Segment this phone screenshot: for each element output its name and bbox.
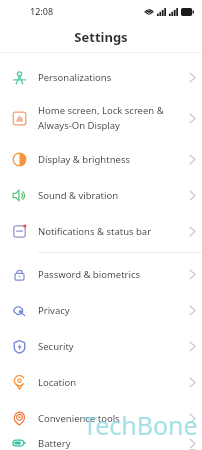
button[interactable]: Display & brightness	[0, 141, 202, 177]
staticText: Personalizations	[38, 71, 112, 84]
staticText: Display & brightness	[38, 153, 130, 166]
button[interactable]: Convenience tools	[0, 400, 202, 436]
staticText: Sound & vibration	[38, 189, 119, 202]
staticText: Password & biometrics	[38, 268, 141, 281]
staticText: Location	[38, 376, 77, 389]
button[interactable]: Notifications & status bar	[0, 213, 202, 249]
button[interactable]: Battery	[0, 436, 202, 450]
button[interactable]: Privacy	[0, 292, 202, 328]
button[interactable]: Home screen, Lock screen &	[0, 95, 202, 141]
staticText: Security	[38, 340, 74, 353]
staticText: Always-On Display	[38, 119, 120, 132]
staticText: Convenience tools	[38, 412, 120, 425]
staticText: Home screen, Lock screen &	[38, 104, 164, 117]
staticText: TechBone	[83, 408, 198, 442]
staticText: Privacy	[38, 304, 70, 317]
button[interactable]: Personalizations	[0, 59, 202, 95]
staticText: Notifications & status bar	[38, 225, 152, 238]
button[interactable]: Location	[0, 364, 202, 400]
staticText: Settings	[74, 28, 128, 46]
staticText: 12:08	[30, 5, 54, 17]
button[interactable]: Security	[0, 328, 202, 364]
button[interactable]: Sound & vibration	[0, 177, 202, 213]
staticText: Battery	[38, 437, 71, 450]
button[interactable]: Password & biometrics	[0, 256, 202, 292]
